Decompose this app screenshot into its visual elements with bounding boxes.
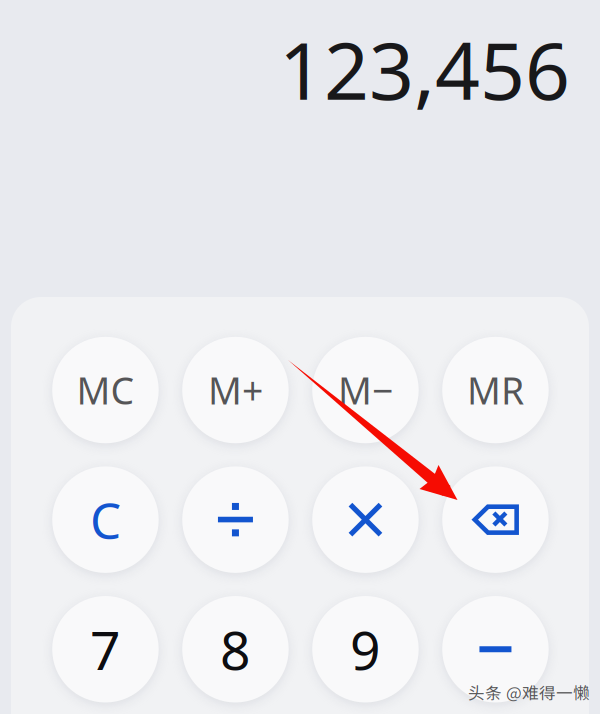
button[interactable]: M− xyxy=(312,337,419,443)
staticText: MC xyxy=(76,365,134,415)
button[interactable]: M+ xyxy=(182,337,289,443)
button[interactable]: 7 xyxy=(52,596,159,702)
staticText: C xyxy=(90,487,121,552)
button[interactable]: MC xyxy=(52,337,159,443)
button[interactable]: Divide xyxy=(182,466,289,573)
button[interactable]: 8 xyxy=(182,596,289,702)
staticText: 123,456 xyxy=(279,17,570,121)
button[interactable]: Minus xyxy=(442,596,549,702)
staticText: 8 xyxy=(220,614,251,685)
staticText: 9 xyxy=(350,614,381,685)
staticText: 头条 @难得一懒 xyxy=(468,680,590,704)
button[interactable]: 9 xyxy=(312,596,419,702)
button[interactable]: Clear xyxy=(52,466,159,573)
staticText: M− xyxy=(338,365,393,415)
button[interactable]: Multiply xyxy=(312,466,419,573)
staticText: MR xyxy=(467,365,524,415)
staticText: 7 xyxy=(90,614,121,685)
button[interactable]: Backspace xyxy=(442,466,549,573)
staticText: M+ xyxy=(208,365,263,415)
button[interactable]: MR xyxy=(442,337,549,443)
